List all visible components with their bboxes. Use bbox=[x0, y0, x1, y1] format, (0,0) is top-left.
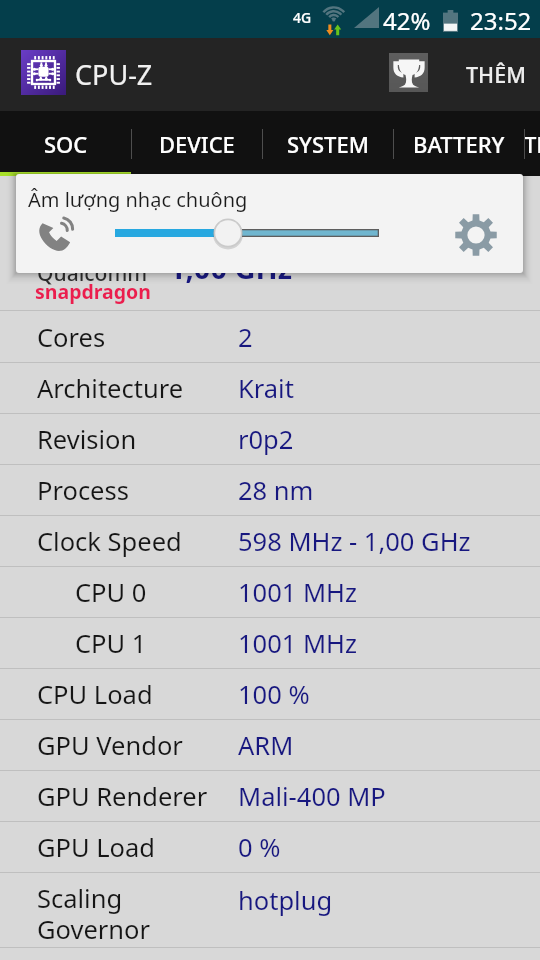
button[interactable]: CPU 0 bbox=[0, 567, 540, 618]
button[interactable]: BATTERY bbox=[393, 111, 524, 176]
staticText: r0p2 bbox=[238, 422, 294, 457]
button[interactable]: Sound settings bbox=[452, 211, 500, 259]
staticText: GPU Load bbox=[37, 830, 156, 865]
staticText: 1001 MHz bbox=[238, 575, 357, 610]
staticText: CPU Load bbox=[37, 677, 153, 712]
staticText: THÊM bbox=[466, 60, 526, 89]
button[interactable]: THÊM bbox=[455, 38, 537, 111]
staticText: hotplug bbox=[238, 883, 333, 918]
staticText: Scaling Governor bbox=[37, 881, 151, 947]
staticText: 100 % bbox=[238, 677, 310, 712]
button[interactable]: CPU Load bbox=[0, 669, 540, 720]
staticText: Process bbox=[37, 473, 129, 508]
staticText: 4G bbox=[293, 8, 312, 27]
staticText: SOC bbox=[44, 129, 88, 159]
staticText: GPU Renderer bbox=[37, 779, 208, 814]
staticText: Architecture bbox=[37, 371, 184, 406]
staticText: BATTERY bbox=[413, 129, 505, 159]
staticText: GPU Vendor bbox=[37, 728, 183, 763]
staticText: Krait bbox=[238, 371, 294, 406]
staticText: 28 nm bbox=[238, 473, 314, 508]
button[interactable]: DEVICE bbox=[131, 111, 262, 176]
staticText: snapdragon bbox=[35, 278, 151, 305]
staticText: 0 % bbox=[238, 830, 281, 865]
button[interactable]: SOC bbox=[0, 111, 131, 176]
staticText: 1,00 GHz bbox=[169, 248, 293, 287]
staticText: ARM bbox=[238, 728, 294, 763]
button[interactable]: Clock Speed bbox=[0, 516, 540, 567]
staticText: 2 bbox=[238, 320, 253, 355]
button[interactable]: Architecture bbox=[0, 363, 540, 414]
staticText: SYSTEM bbox=[287, 129, 369, 159]
button[interactable]: SYSTEM bbox=[262, 111, 393, 176]
button[interactable]: Revision bbox=[0, 414, 540, 465]
staticText: 1001 MHz bbox=[238, 626, 357, 661]
button[interactable]: GPU Renderer bbox=[0, 771, 540, 822]
button[interactable]: GPU Load bbox=[0, 822, 540, 873]
staticText: CPU 1 bbox=[75, 626, 147, 661]
staticText: THERMAL bbox=[524, 129, 540, 159]
staticText: 598 MHz - 1,00 GHz bbox=[238, 524, 471, 559]
button[interactable]: Process bbox=[0, 465, 540, 516]
staticText: Âm lượng nhạc chuông bbox=[28, 186, 248, 213]
button[interactable]: CPU 1 bbox=[0, 618, 540, 669]
staticText: CPU-Z bbox=[75, 56, 153, 93]
staticText: 23:52 bbox=[470, 4, 532, 37]
button[interactable]: Awards bbox=[389, 53, 428, 92]
staticText: Clock Speed bbox=[37, 524, 182, 559]
staticText: Cores bbox=[37, 320, 106, 355]
staticText: Qualcomm bbox=[37, 259, 148, 288]
button[interactable]: GPU Vendor bbox=[0, 720, 540, 771]
staticText: Mali-400 MP bbox=[238, 779, 386, 814]
staticText: 42% bbox=[383, 4, 431, 37]
button[interactable]: Scaling Governor bbox=[0, 873, 540, 948]
staticText: Revision bbox=[37, 422, 137, 457]
staticText: CPU 0 bbox=[75, 575, 147, 610]
button[interactable]: THERMAL bbox=[524, 111, 540, 176]
button[interactable]: Cores bbox=[0, 311, 540, 363]
staticText: DEVICE bbox=[159, 129, 235, 159]
